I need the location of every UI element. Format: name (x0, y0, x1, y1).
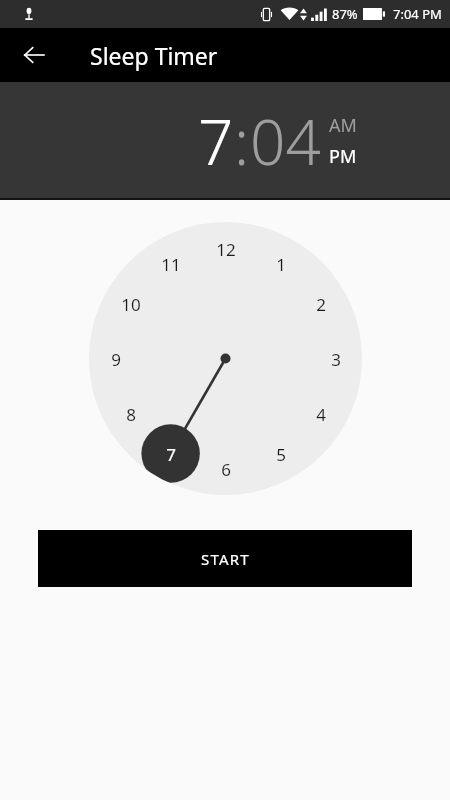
button[interactable]: START (38, 530, 412, 587)
staticText: START (201, 549, 250, 569)
staticText: PM (329, 144, 357, 169)
staticText: 7 (198, 99, 234, 183)
button[interactable]: Clock hour picker (89, 222, 362, 495)
staticText: 8 (126, 403, 136, 426)
button[interactable]: PM (329, 144, 357, 169)
staticText: 87% (332, 5, 358, 23)
staticText: 3 (331, 348, 341, 371)
staticText: 04 (250, 99, 321, 183)
staticText: 10 (121, 293, 141, 316)
staticText: AM (329, 113, 357, 138)
staticText: 11 (161, 253, 181, 276)
staticText: : (234, 99, 250, 183)
staticText: 12 (216, 238, 236, 261)
staticText: Sleep Timer (90, 40, 218, 71)
button[interactable]: 04 (250, 99, 321, 183)
staticText: 2 (316, 293, 326, 316)
staticText: 6 (221, 458, 231, 481)
button[interactable]: 7 (198, 99, 234, 183)
button[interactable]: AM (329, 113, 357, 138)
staticText: 7 (166, 443, 176, 466)
staticText: 5 (276, 443, 286, 466)
button[interactable]: Back (12, 33, 56, 77)
staticText: 7:04 PM (393, 5, 442, 23)
staticText: 1 (276, 253, 286, 276)
staticText: 9 (111, 348, 121, 371)
staticText: 4 (316, 403, 326, 426)
